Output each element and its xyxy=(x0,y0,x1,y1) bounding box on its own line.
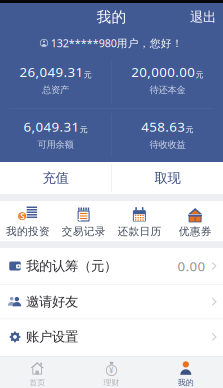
button[interactable]: 充值 xyxy=(0,162,111,194)
staticText: 账户设置 xyxy=(26,329,78,345)
staticText: S xyxy=(20,211,24,221)
button[interactable]: 我的认筹（元） xyxy=(0,248,223,284)
button[interactable]: 优惠券 xyxy=(167,201,223,241)
staticText: 总资产 xyxy=(42,84,69,96)
staticText: 我的投资 xyxy=(6,225,50,238)
staticText: 取现 xyxy=(154,170,180,186)
staticText: 理财 xyxy=(103,378,119,387)
staticText: 待还本金 xyxy=(149,84,185,96)
staticText: 458.63 xyxy=(141,118,185,135)
button[interactable]: 交易记录 xyxy=(56,201,112,241)
staticText: 元 xyxy=(84,70,92,80)
staticText: 我的 xyxy=(96,8,126,26)
staticText: 132*****980用户，您好！ xyxy=(51,36,183,50)
button[interactable]: 首页 xyxy=(0,357,74,388)
staticText: 6,049.31 xyxy=(23,118,79,135)
staticText: 充值 xyxy=(43,170,69,186)
staticText: 待收收益 xyxy=(149,139,185,150)
button[interactable]: ¥ xyxy=(74,357,149,388)
staticText: 退出 xyxy=(190,9,216,25)
staticText: 首页 xyxy=(29,378,45,387)
staticText: 邀请好友 xyxy=(26,293,78,310)
staticText: 元 xyxy=(196,70,204,80)
button[interactable]: 邀请好友 xyxy=(0,285,223,319)
staticText: 我的认筹（元） xyxy=(26,258,117,274)
staticText: 元 xyxy=(80,125,88,134)
staticText: 交易记录 xyxy=(62,225,106,238)
button[interactable]: 我的 xyxy=(149,357,223,388)
button[interactable]: 还款日历 xyxy=(111,201,167,241)
button[interactable]: 账户设置 xyxy=(0,319,223,354)
button[interactable]: 取现 xyxy=(112,162,223,194)
staticText: ¥ xyxy=(109,365,114,376)
staticText: 优惠券 xyxy=(179,225,212,238)
button[interactable]: 退出 xyxy=(183,3,223,31)
staticText: 我的 xyxy=(178,378,194,387)
staticText: 20,000.00 xyxy=(131,63,195,81)
staticText: 0.00 xyxy=(177,257,205,275)
staticText: 还款日历 xyxy=(117,225,161,238)
staticText: 26,049.31 xyxy=(19,63,83,81)
staticText: 可用余额 xyxy=(38,139,74,150)
staticText: 元 xyxy=(186,125,194,134)
button[interactable]: S xyxy=(0,201,56,241)
